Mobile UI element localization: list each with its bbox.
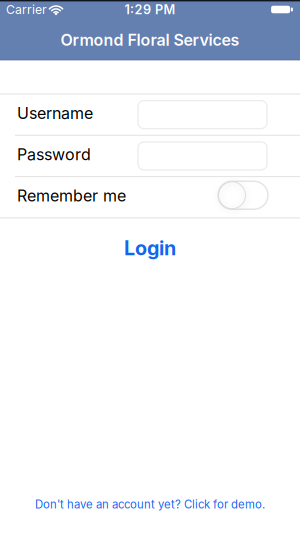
staticText: Ormond Floral Services — [60, 31, 239, 49]
staticText: Carrier — [6, 2, 47, 17]
button[interactable]: Don't have an account yet? Click for dem… — [35, 498, 265, 533]
staticText: Password — [17, 145, 91, 164]
button[interactable]: Password text field — [0, 136, 300, 176]
staticText: Remember me — [17, 186, 126, 205]
button[interactable]: Remember me — [0, 177, 300, 217]
button[interactable]: Username text field — [0, 94, 300, 135]
staticText: Don't have an account yet? Click for dem… — [35, 498, 265, 511]
staticText: Login — [124, 236, 176, 260]
staticText: Username — [17, 104, 93, 123]
staticText: 1:29 PM — [124, 2, 175, 17]
button[interactable]: Login — [124, 218, 176, 260]
